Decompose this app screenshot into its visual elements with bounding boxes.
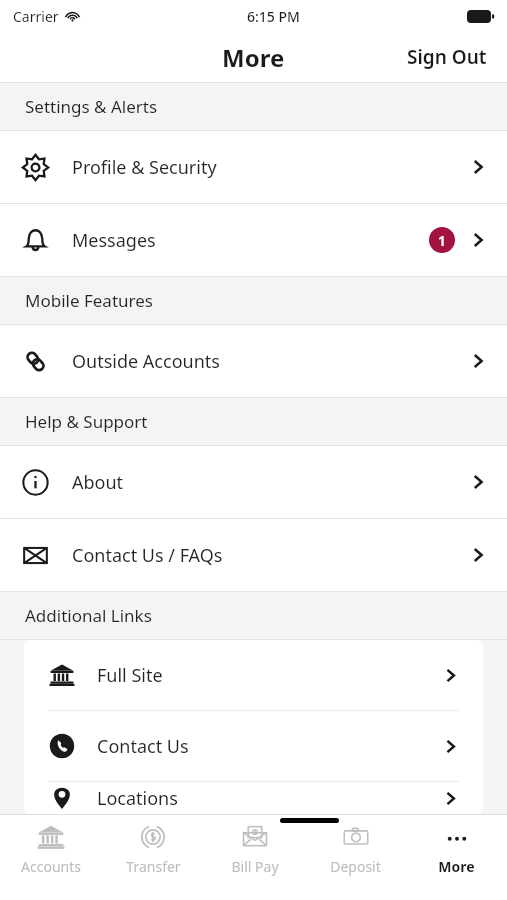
button[interactable]: Profile & Security — [0, 131, 507, 203]
staticText: Contact Us — [97, 734, 189, 759]
button[interactable]: Sign Out — [387, 34, 507, 80]
button[interactable]: Contact Us — [24, 711, 483, 781]
button[interactable]: Full Site — [24, 640, 483, 710]
staticText: Profile & Security — [72, 155, 217, 180]
button[interactable]: Transfer — [102, 815, 204, 883]
staticText: More — [438, 857, 475, 876]
staticText: Settings & Alerts — [25, 95, 158, 118]
staticText: Deposit — [330, 857, 381, 876]
staticText: Locations — [97, 786, 178, 811]
staticText: Mobile Features — [25, 289, 153, 312]
button[interactable]: Messages — [0, 204, 507, 276]
button[interactable]: Locations — [24, 782, 483, 814]
staticText: Help & Support — [25, 410, 148, 433]
staticText: Sign Out — [407, 44, 487, 70]
button[interactable]: Accounts — [0, 815, 102, 883]
staticText: Messages — [72, 228, 156, 253]
staticText: Additional Links — [25, 604, 152, 627]
staticText: 1 — [438, 231, 447, 250]
staticText: More — [222, 41, 285, 74]
button[interactable]: Deposit — [305, 815, 406, 883]
staticText: Bill Pay — [231, 857, 279, 876]
staticText: Full Site — [97, 663, 163, 688]
button[interactable]: Bill Pay — [204, 815, 305, 883]
staticText: Accounts — [21, 857, 81, 876]
staticText: Contact Us / FAQs — [72, 543, 223, 568]
staticText: About — [72, 470, 124, 495]
staticText: Outside Accounts — [72, 349, 220, 374]
button[interactable]: Outside Accounts — [0, 325, 507, 397]
staticText: Carrier — [13, 7, 59, 26]
button[interactable]: More — [406, 815, 507, 883]
staticText: Transfer — [126, 857, 181, 876]
button[interactable]: About — [0, 446, 507, 518]
staticText: 6:15 PM — [247, 7, 300, 26]
button[interactable]: Contact Us / FAQs — [0, 519, 507, 591]
